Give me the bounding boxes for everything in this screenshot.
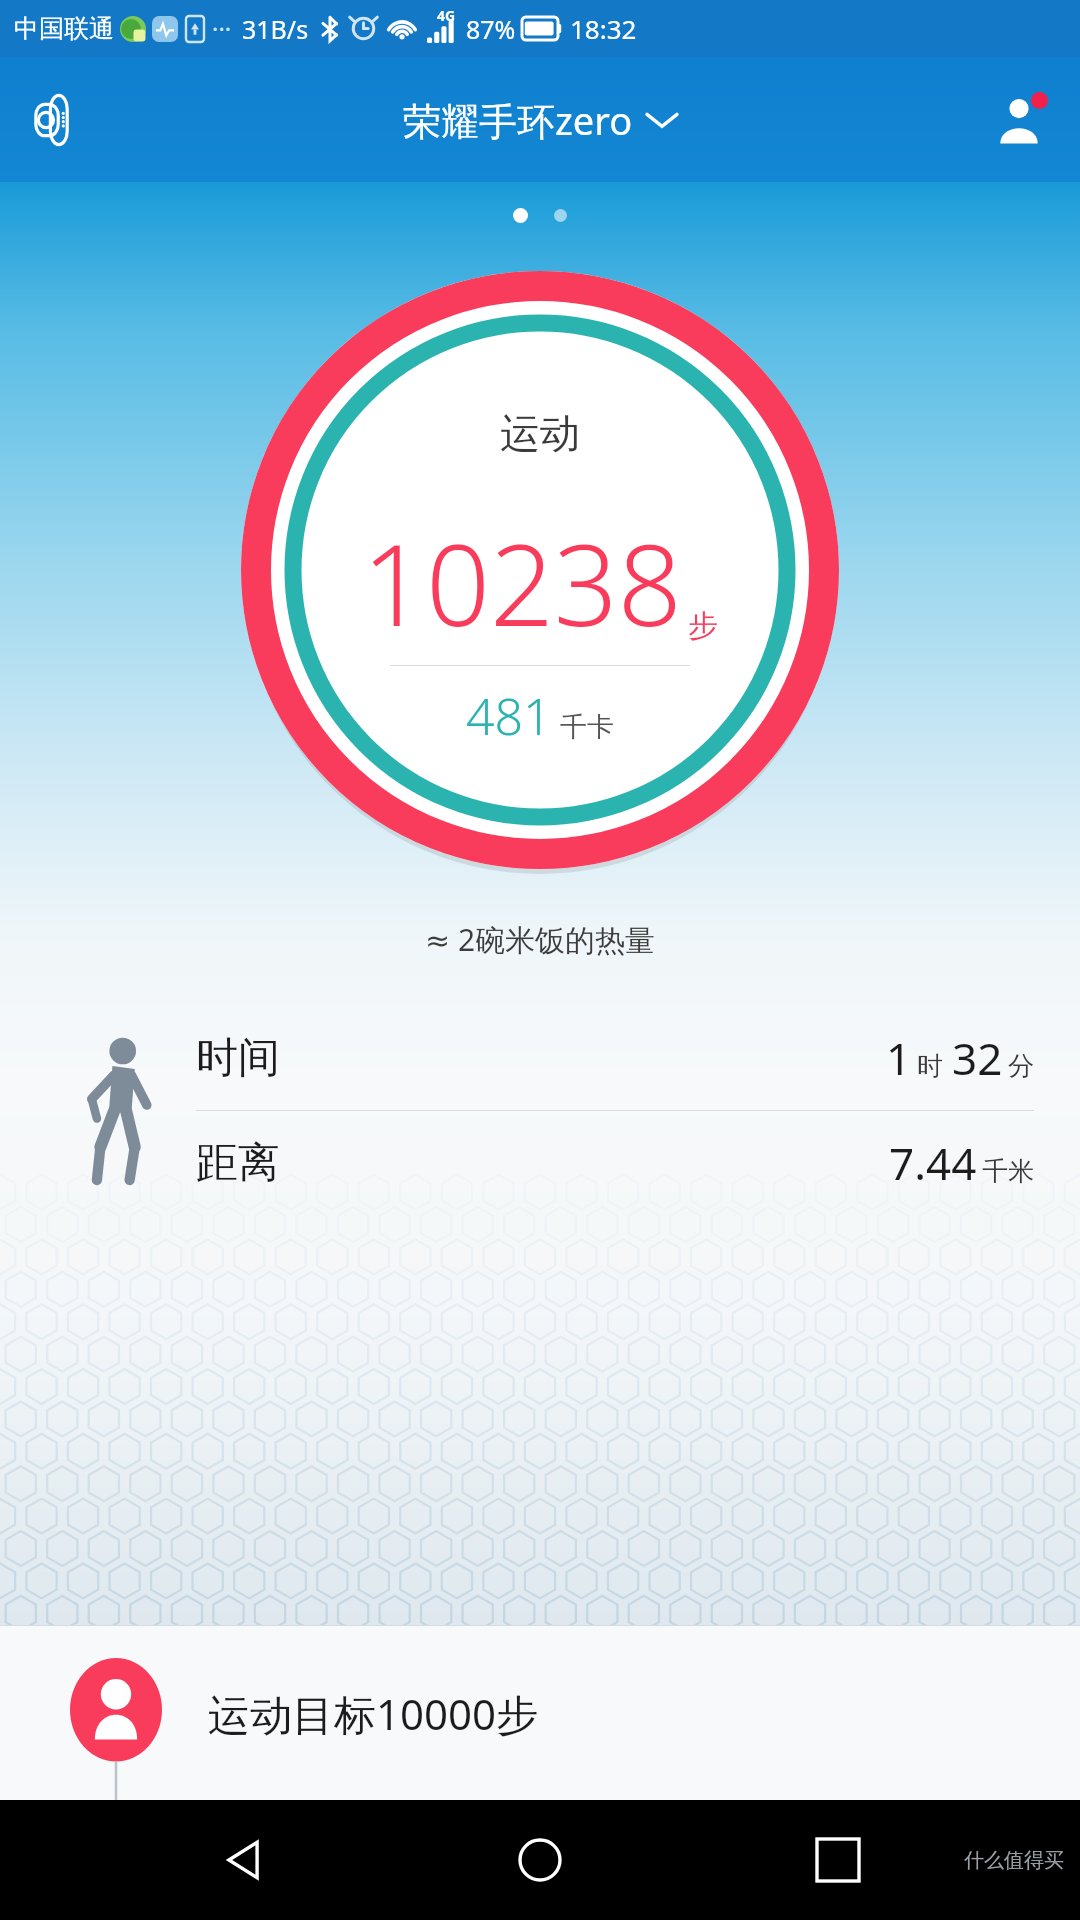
staticText: 31B/s — [242, 12, 309, 46]
button[interactable]: 荣耀手环zero — [403, 94, 677, 146]
button[interactable]: 时间 — [196, 1006, 1034, 1110]
staticText: 1 — [886, 1028, 912, 1088]
staticText: ≈ 2碗米饭的热量 — [425, 919, 656, 960]
button[interactable]: Account — [980, 81, 1058, 159]
staticText: 运动目标10000步 — [208, 1685, 539, 1742]
button[interactable]: 运动目标10000步 — [0, 1625, 1080, 1800]
button[interactable]: Back — [188, 1805, 298, 1915]
staticText: 千米 — [982, 1155, 1034, 1188]
staticText: 千卡 — [560, 710, 614, 744]
staticText: 18:32 — [570, 11, 637, 46]
staticText: ··· — [212, 12, 232, 45]
button[interactable]: Home — [485, 1805, 595, 1915]
staticText: 87% — [466, 12, 516, 46]
button[interactable]: 运动 — [235, 265, 845, 875]
button[interactable]: 距离 — [196, 1111, 1034, 1215]
button[interactable]: Band device — [16, 80, 96, 160]
staticText: 7.44 — [889, 1133, 977, 1193]
staticText: 时间 — [196, 1032, 280, 1085]
staticText: 什么值得买 — [964, 1848, 1064, 1873]
staticText: 运动 — [500, 408, 580, 458]
staticText: 荣耀手环zero — [403, 94, 633, 146]
staticText: 时 — [917, 1050, 943, 1083]
staticText: 32 — [952, 1028, 1003, 1088]
staticText: 10238 — [362, 506, 682, 659]
staticText: 4G — [437, 6, 456, 25]
staticText: 481 — [466, 682, 552, 750]
staticText: 步 — [688, 607, 718, 645]
button[interactable]: Recents — [783, 1805, 893, 1915]
staticText: 分 — [1008, 1050, 1034, 1083]
staticText: 中国联通 — [14, 13, 114, 44]
staticText: 距离 — [196, 1137, 280, 1190]
